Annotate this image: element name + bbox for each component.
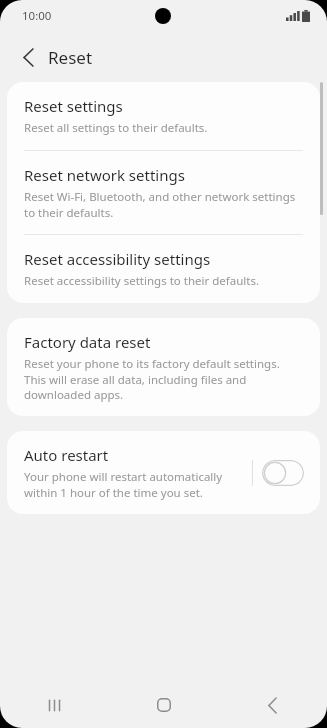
staticText: Reset your phone to its factory default … xyxy=(24,356,303,402)
button[interactable]: Home xyxy=(109,682,218,728)
staticText: Your phone will restart automatically wi… xyxy=(24,469,252,500)
button[interactable]: Reset network settings xyxy=(7,151,320,234)
staticText: Reset network settings xyxy=(24,165,185,185)
staticText: Reset xyxy=(48,46,93,69)
staticText: Reset all settings to their defaults. xyxy=(24,120,208,136)
button[interactable]: Back xyxy=(218,682,327,728)
button[interactable]: Reset settings xyxy=(7,82,320,150)
button[interactable]: Auto restart xyxy=(7,431,320,514)
staticText: Auto restart xyxy=(24,445,109,465)
staticText: Reset Wi-Fi, Bluetooth, and other networ… xyxy=(24,189,303,220)
staticText: Reset settings xyxy=(24,96,123,116)
button[interactable]: Auto restart, off xyxy=(262,460,304,486)
staticText: Reset accessibility settings to their de… xyxy=(24,273,259,289)
button[interactable]: Navigate up xyxy=(10,39,46,75)
staticText: 10:00 xyxy=(22,8,52,24)
button[interactable]: Reset accessibility settings xyxy=(7,235,320,303)
staticText: Reset accessibility settings xyxy=(24,249,211,269)
button[interactable]: Recent apps xyxy=(0,682,109,728)
button[interactable]: Factory data reset xyxy=(7,318,320,416)
staticText: Factory data reset xyxy=(24,332,151,352)
